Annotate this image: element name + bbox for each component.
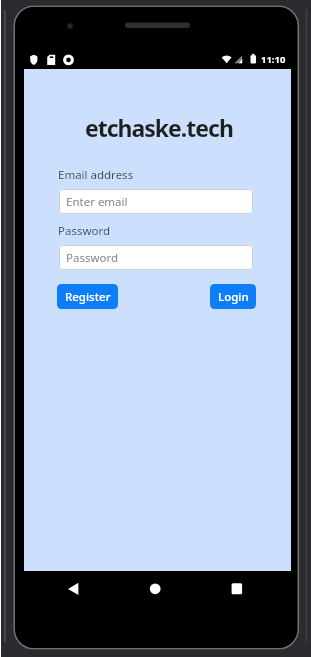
staticText: Register	[65, 289, 111, 305]
staticText: Enter email	[66, 194, 128, 210]
staticText: Login	[218, 289, 249, 305]
button[interactable]: Register	[57, 284, 118, 309]
staticText: Email address	[58, 167, 134, 183]
button[interactable]: Login	[210, 284, 256, 309]
staticText: etchaske.tech	[85, 112, 233, 143]
staticText: Password	[58, 223, 111, 239]
staticText: 11:10	[261, 53, 286, 66]
button[interactable]: Enter email	[59, 189, 253, 214]
staticText: Password	[66, 250, 119, 266]
button[interactable]: Password	[59, 245, 253, 270]
